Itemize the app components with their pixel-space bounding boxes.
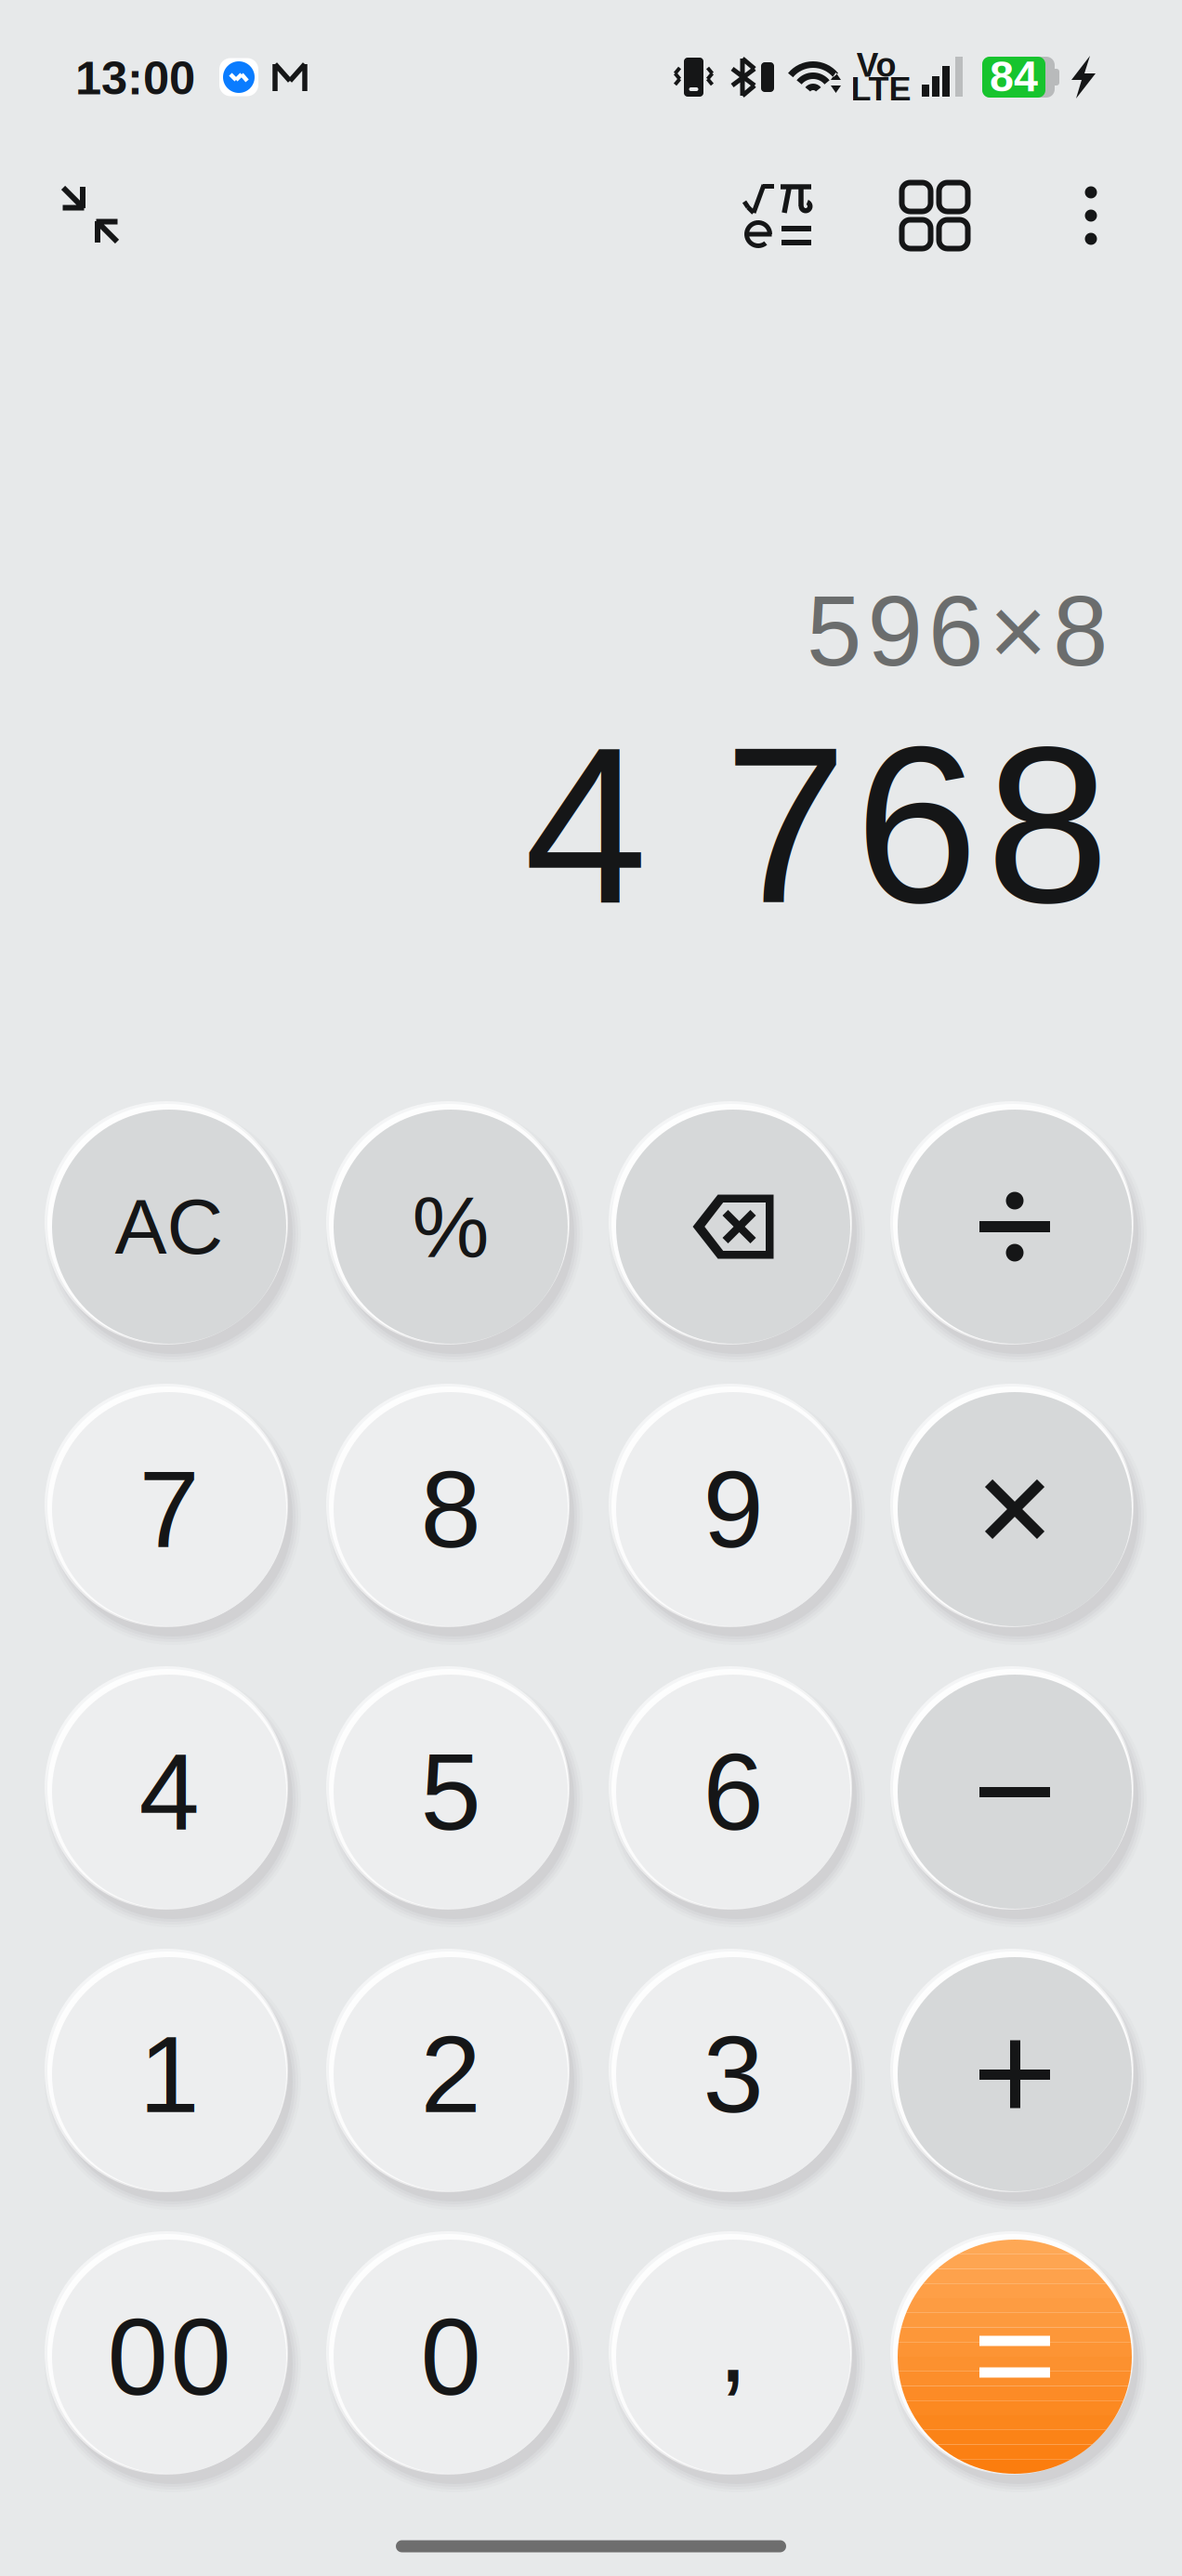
staticText: 6 [703, 1731, 763, 1853]
staticText: 9 [703, 1448, 763, 1570]
button[interactable]: 1 [29, 1934, 309, 2215]
button[interactable]: 5 [310, 1651, 591, 1932]
staticText: 5 [420, 1731, 481, 1853]
button[interactable]: 9 [593, 1369, 873, 1649]
button[interactable]: 7 [29, 1369, 309, 1649]
button[interactable]: Backspace [593, 1086, 873, 1367]
staticText: 1 [139, 2013, 199, 2135]
button[interactable]: 8 [310, 1369, 591, 1649]
staticText: 7 [139, 1448, 199, 1570]
staticText: 00 [107, 2296, 231, 2418]
button[interactable]: 2 [310, 1934, 591, 2215]
staticText: 4 768 [524, 701, 1110, 949]
button[interactable]: More options [1040, 160, 1142, 271]
button[interactable]: 4 [29, 1651, 309, 1932]
staticText: 84 [990, 52, 1038, 100]
button[interactable]: Collapse [34, 159, 146, 270]
button[interactable]: Scientific mode [722, 161, 834, 272]
button[interactable]: 0 [310, 2216, 591, 2497]
button[interactable]: Unit converter [879, 160, 991, 271]
button[interactable]: Decimal comma [593, 2216, 873, 2497]
staticText: 0 [420, 2296, 481, 2418]
button[interactable]: Multiply [874, 1369, 1155, 1649]
button[interactable]: 3 [593, 1934, 873, 2215]
staticText: 13:00 [75, 52, 195, 104]
staticText: , [718, 2283, 749, 2405]
staticText: LTE [851, 71, 911, 108]
staticText: % [412, 1178, 489, 1275]
button[interactable]: Divide [874, 1086, 1155, 1367]
staticText: 596×8 [807, 576, 1108, 686]
staticText: AC [115, 1183, 223, 1270]
staticText: 3 [703, 2013, 763, 2135]
staticText: 2 [420, 2013, 481, 2135]
button[interactable]: 6 [593, 1651, 873, 1932]
button[interactable]: Equals [874, 2216, 1155, 2497]
staticText: 4 [139, 1731, 199, 1853]
button[interactable]: All clear [29, 1086, 309, 1367]
staticText: 8 [420, 1448, 481, 1570]
staticText: Vo [856, 46, 896, 84]
button[interactable]: Minus [874, 1651, 1155, 1932]
button[interactable]: Percent [310, 1086, 591, 1367]
button[interactable]: Plus [874, 1934, 1155, 2215]
button[interactable]: Double zero [29, 2216, 309, 2497]
